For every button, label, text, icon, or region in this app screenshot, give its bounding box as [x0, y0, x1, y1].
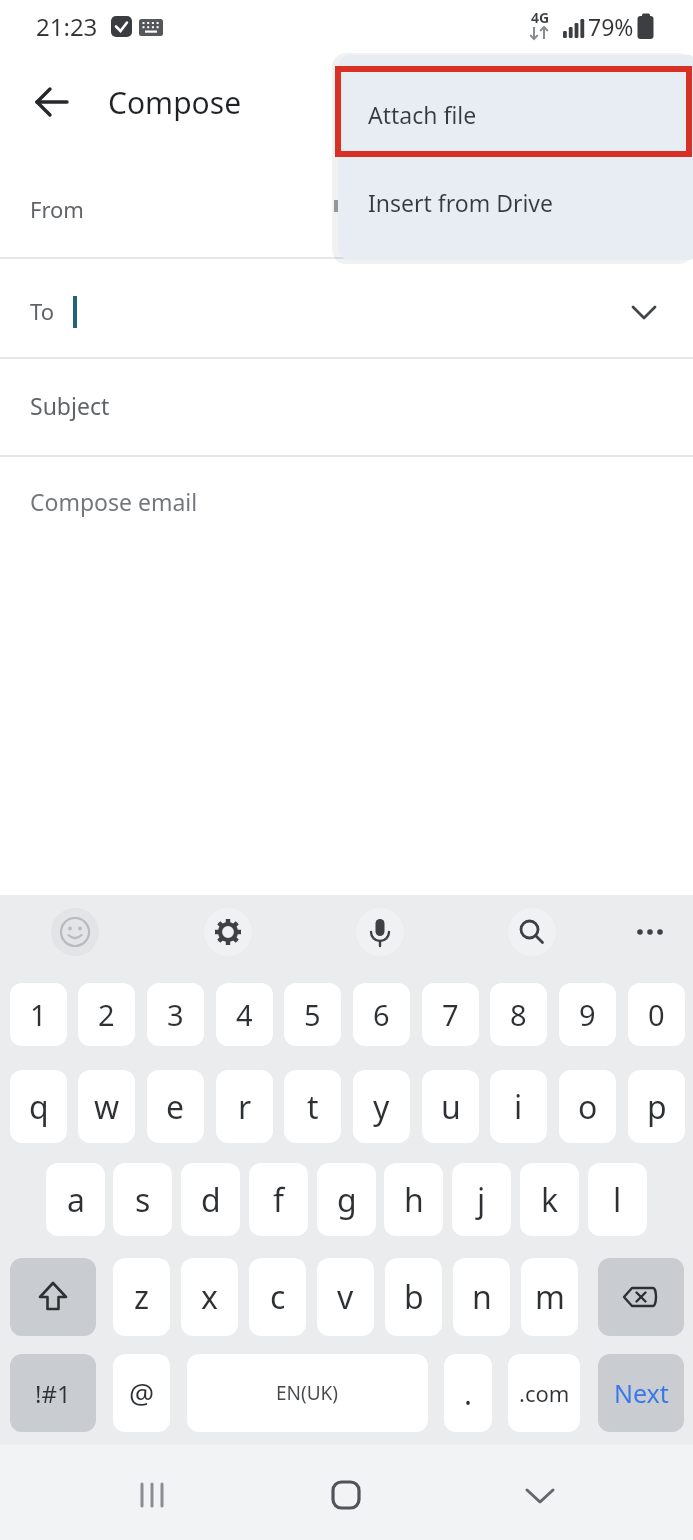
button[interactable]: 4 — [216, 983, 273, 1046]
button[interactable]: i — [490, 1070, 547, 1143]
button[interactable]: g — [317, 1163, 376, 1236]
staticText: b — [404, 1275, 424, 1319]
button[interactable]: 2 — [78, 983, 135, 1046]
button[interactable]: 6 — [353, 983, 410, 1046]
button[interactable]: v — [317, 1258, 374, 1336]
staticText: u — [441, 1085, 461, 1129]
button[interactable]: h — [384, 1163, 443, 1236]
staticText: .com — [519, 1378, 570, 1408]
button[interactable]: w — [78, 1070, 135, 1143]
staticText: 7 — [442, 995, 459, 1034]
staticText: s — [135, 1178, 151, 1222]
button[interactable] — [30, 80, 74, 124]
button[interactable]: !#1 — [10, 1354, 96, 1432]
button[interactable]: 7 — [422, 983, 479, 1046]
staticText: x — [201, 1275, 218, 1319]
staticText: 6 — [373, 995, 390, 1034]
staticText: c — [270, 1275, 286, 1319]
staticText: m — [535, 1275, 565, 1319]
button[interactable]: .com — [508, 1354, 580, 1432]
staticText: 0 — [648, 995, 665, 1034]
button[interactable]: e — [147, 1070, 204, 1143]
staticText: Attach file — [368, 99, 477, 130]
button[interactable]: 3 — [147, 983, 204, 1046]
button[interactable]: b — [385, 1258, 442, 1336]
button[interactable]: q — [10, 1070, 67, 1143]
button[interactable]: f — [249, 1163, 308, 1236]
button[interactable]: z — [113, 1258, 170, 1336]
staticText: Next — [614, 1376, 669, 1410]
staticText: @ — [129, 1374, 155, 1412]
button[interactable] — [10, 1258, 96, 1336]
staticText: v — [337, 1275, 354, 1319]
staticText: i — [514, 1085, 523, 1129]
staticText: !#1 — [35, 1377, 71, 1410]
staticText: Compose email — [30, 486, 198, 517]
button[interactable]: 0 — [628, 983, 685, 1046]
button[interactable]: l — [588, 1163, 647, 1236]
staticText: t — [307, 1085, 319, 1129]
button[interactable] — [118, 1461, 186, 1529]
staticText: 4G — [531, 8, 550, 27]
staticText: a — [67, 1178, 85, 1222]
button[interactable]: d — [181, 1163, 240, 1236]
button[interactable]: y — [353, 1070, 410, 1143]
button[interactable] — [356, 908, 404, 956]
staticText: y — [373, 1085, 390, 1129]
staticText: 4 — [236, 995, 253, 1034]
staticText: From — [30, 194, 84, 224]
staticText: j — [477, 1178, 486, 1222]
staticText: l — [613, 1178, 622, 1222]
staticText: z — [134, 1275, 150, 1319]
staticText: h — [404, 1178, 424, 1222]
staticText: 5 — [304, 995, 321, 1034]
staticText: 8 — [510, 995, 527, 1034]
button[interactable]: . — [444, 1354, 492, 1432]
staticText: r — [238, 1085, 252, 1129]
button[interactable] — [51, 908, 99, 956]
button[interactable]: 9 — [559, 983, 616, 1046]
button[interactable] — [0, 259, 693, 357]
button[interactable]: 8 — [490, 983, 547, 1046]
button[interactable]: u — [422, 1070, 479, 1143]
staticText: To — [30, 296, 55, 326]
staticText: 2 — [98, 995, 115, 1034]
button[interactable] — [338, 159, 693, 251]
button[interactable]: 1 — [10, 983, 67, 1046]
button[interactable] — [0, 457, 693, 577]
button[interactable]: o — [559, 1070, 616, 1143]
button[interactable] — [598, 1258, 684, 1336]
button[interactable] — [506, 1461, 574, 1529]
button[interactable] — [0, 359, 693, 455]
staticText: 1 — [30, 995, 47, 1034]
button[interactable]: x — [181, 1258, 238, 1336]
button[interactable]: p — [628, 1070, 685, 1143]
button[interactable]: t — [284, 1070, 341, 1143]
staticText: n — [472, 1275, 492, 1319]
button[interactable]: k — [520, 1163, 579, 1236]
staticText: e — [166, 1085, 185, 1129]
staticText: 79% — [588, 11, 634, 42]
button[interactable]: r — [216, 1070, 273, 1143]
staticText: w — [94, 1085, 120, 1129]
staticText: d — [201, 1178, 221, 1222]
button[interactable]: m — [521, 1258, 578, 1336]
button[interactable] — [626, 908, 674, 956]
button[interactable]: j — [452, 1163, 511, 1236]
button[interactable]: n — [453, 1258, 510, 1336]
button[interactable] — [312, 1461, 380, 1529]
staticText: 3 — [167, 995, 184, 1034]
button[interactable]: 5 — [284, 983, 341, 1046]
button[interactable] — [508, 908, 556, 956]
button[interactable] — [204, 908, 252, 956]
button[interactable]: a — [46, 1163, 105, 1236]
button[interactable]: c — [249, 1258, 306, 1336]
button[interactable]: @ — [113, 1354, 170, 1432]
staticText: p — [647, 1085, 667, 1129]
staticText: Compose — [108, 82, 242, 123]
button[interactable]: EN(UK) — [187, 1354, 428, 1432]
staticText: q — [29, 1085, 49, 1129]
button[interactable]: s — [113, 1163, 172, 1236]
button[interactable]: Next — [598, 1354, 684, 1432]
button[interactable] — [338, 67, 693, 159]
